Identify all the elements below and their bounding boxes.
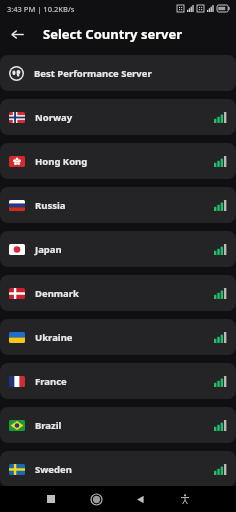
staticText: Select Country server	[43, 25, 183, 43]
button[interactable]: France	[0, 363, 236, 399]
staticText: Best Performance Server	[34, 67, 152, 80]
button[interactable]: Japan	[0, 231, 236, 267]
staticText: Brazil	[35, 419, 214, 432]
button[interactable]: Norway	[0, 99, 236, 135]
button[interactable]: Brazil	[0, 407, 236, 443]
staticText: Japan	[35, 243, 214, 256]
staticText: Denmark	[35, 287, 214, 300]
button[interactable]: Denmark	[0, 275, 236, 311]
button[interactable]: Sweden	[0, 451, 236, 487]
staticText: Singapore	[35, 497, 214, 510]
button[interactable]: Recents	[38, 486, 64, 512]
button[interactable]: Ukraine	[0, 319, 236, 355]
staticText: Russia	[35, 199, 214, 212]
button[interactable]: Hong Kong	[0, 143, 236, 179]
staticText: Norway	[35, 111, 214, 124]
button[interactable]: Accessibility	[172, 486, 198, 512]
staticText: Ukraine	[35, 331, 214, 344]
staticText: France	[35, 375, 214, 388]
button[interactable]: Back	[127, 486, 153, 512]
button[interactable]: Back	[0, 17, 34, 51]
button[interactable]: Singapore	[0, 495, 236, 512]
button[interactable]: Home	[83, 486, 109, 512]
button[interactable]: Russia	[0, 187, 236, 223]
staticText: Hong Kong	[35, 155, 214, 168]
staticText: 3:43 PM | 10.2KB/s	[7, 4, 75, 14]
button[interactable]: Best Performance Server	[0, 55, 236, 91]
staticText: Sweden	[35, 463, 214, 476]
